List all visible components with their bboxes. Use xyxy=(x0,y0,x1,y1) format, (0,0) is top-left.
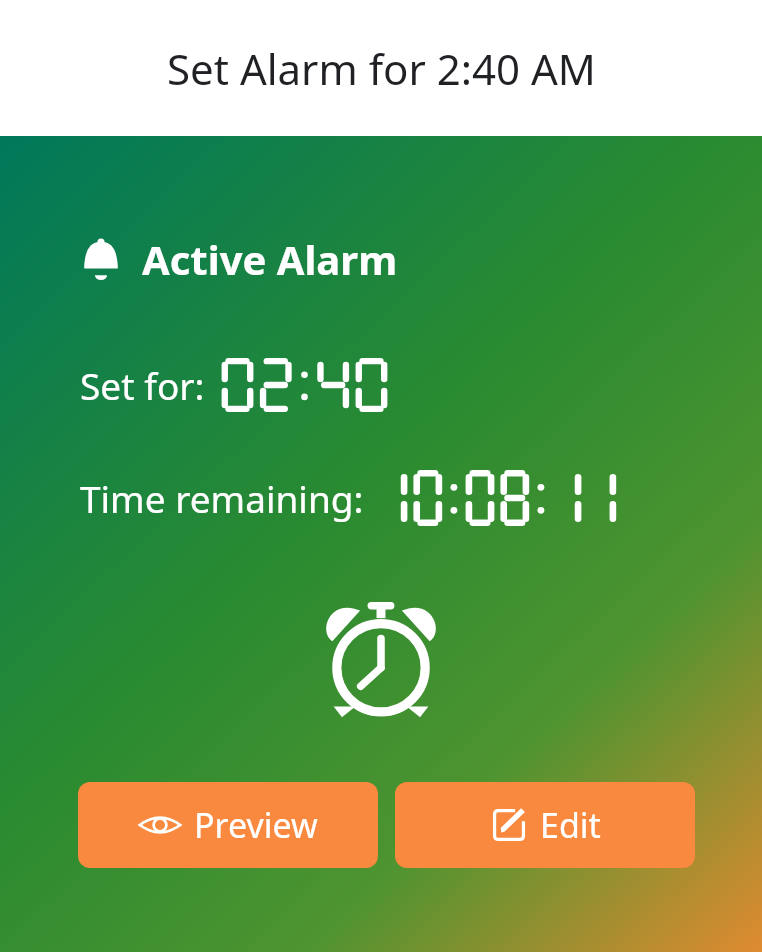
staticText: Preview xyxy=(194,802,318,848)
other: Preview xyxy=(138,809,182,841)
button[interactable]: Edit xyxy=(395,782,695,868)
other: Edit xyxy=(490,806,528,844)
staticText: Set Alarm for 2:40 AM xyxy=(167,40,596,97)
staticText: Active Alarm xyxy=(142,232,398,286)
staticText: Edit xyxy=(540,802,601,848)
staticText: Set for: xyxy=(80,360,205,410)
button[interactable]: Preview xyxy=(78,782,378,868)
staticText: Time remaining: xyxy=(80,473,364,523)
